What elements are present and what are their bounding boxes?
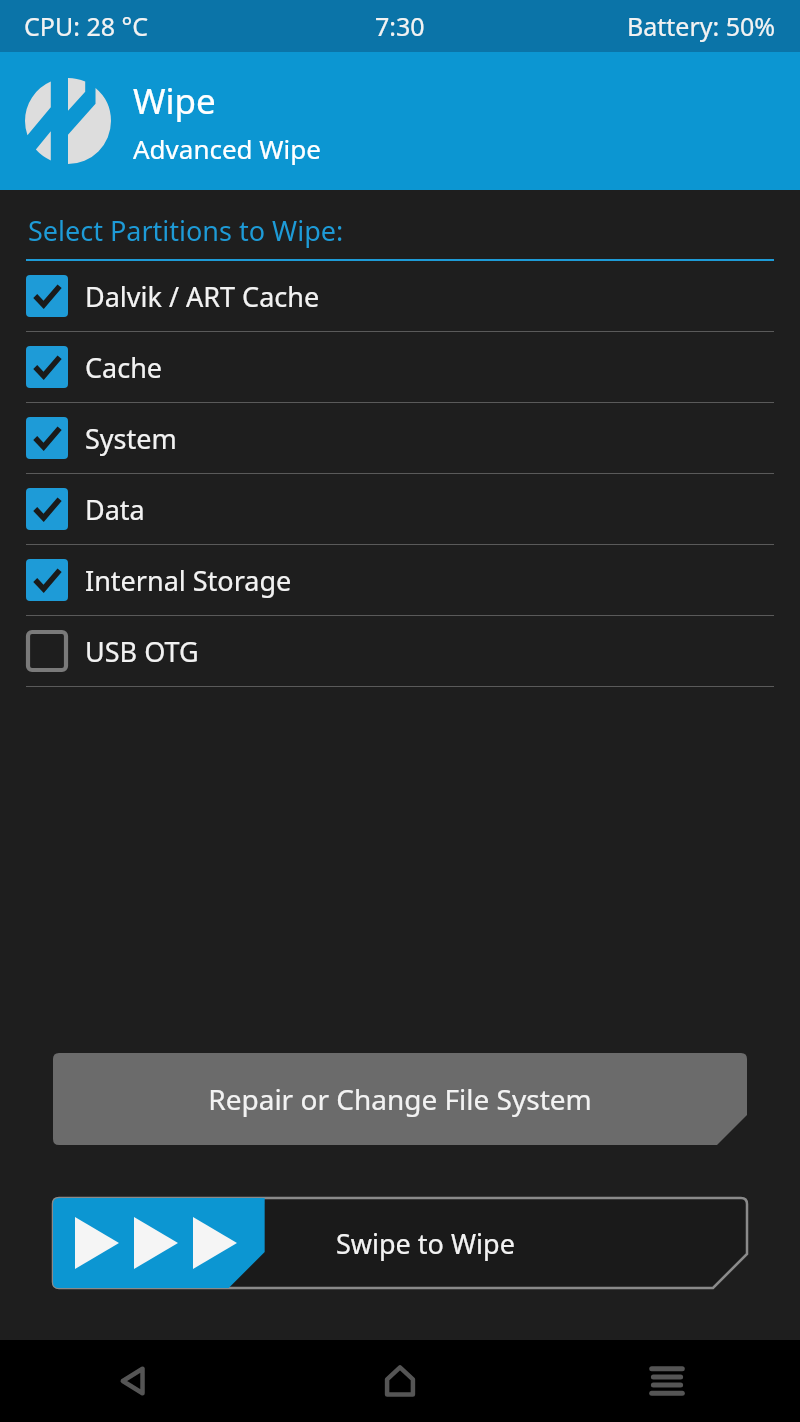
staticText: USB OTG <box>85 633 199 670</box>
staticText: System <box>85 420 177 457</box>
button[interactable]: Menu <box>533 1340 800 1422</box>
button[interactable]: USB OTG <box>0 616 800 687</box>
staticText: Cache <box>85 349 163 386</box>
staticText: Swipe to Wipe <box>336 1225 515 1262</box>
button[interactable]: Repair or Change File System <box>53 1053 747 1145</box>
button[interactable]: Cache <box>0 332 800 403</box>
staticText: Repair or Change File System <box>208 1080 592 1118</box>
button[interactable]: Dalvik / ART Cache <box>0 261 800 332</box>
staticText: CPU: 28 °C <box>24 9 149 43</box>
button[interactable]: Back <box>0 1340 266 1422</box>
staticText: Dalvik / ART Cache <box>85 278 320 315</box>
button[interactable]: TWRP logo <box>0 52 800 190</box>
button[interactable]: Data <box>0 474 800 545</box>
staticText: Advanced Wipe <box>133 131 321 166</box>
staticText: Select Partitions to Wipe: <box>28 212 344 249</box>
button[interactable]: System <box>0 403 800 474</box>
button[interactable]: Home <box>266 1340 533 1422</box>
staticText: 7:30 <box>375 9 425 43</box>
other: TWRP logo <box>25 78 111 164</box>
staticText: Internal Storage <box>85 562 292 599</box>
button[interactable]: Internal Storage <box>0 545 800 616</box>
staticText: Battery: 50% <box>627 9 776 43</box>
staticText: Data <box>85 491 145 528</box>
staticText: Wipe <box>133 77 216 125</box>
button[interactable]: Swipe to Wipe <box>53 1198 747 1288</box>
